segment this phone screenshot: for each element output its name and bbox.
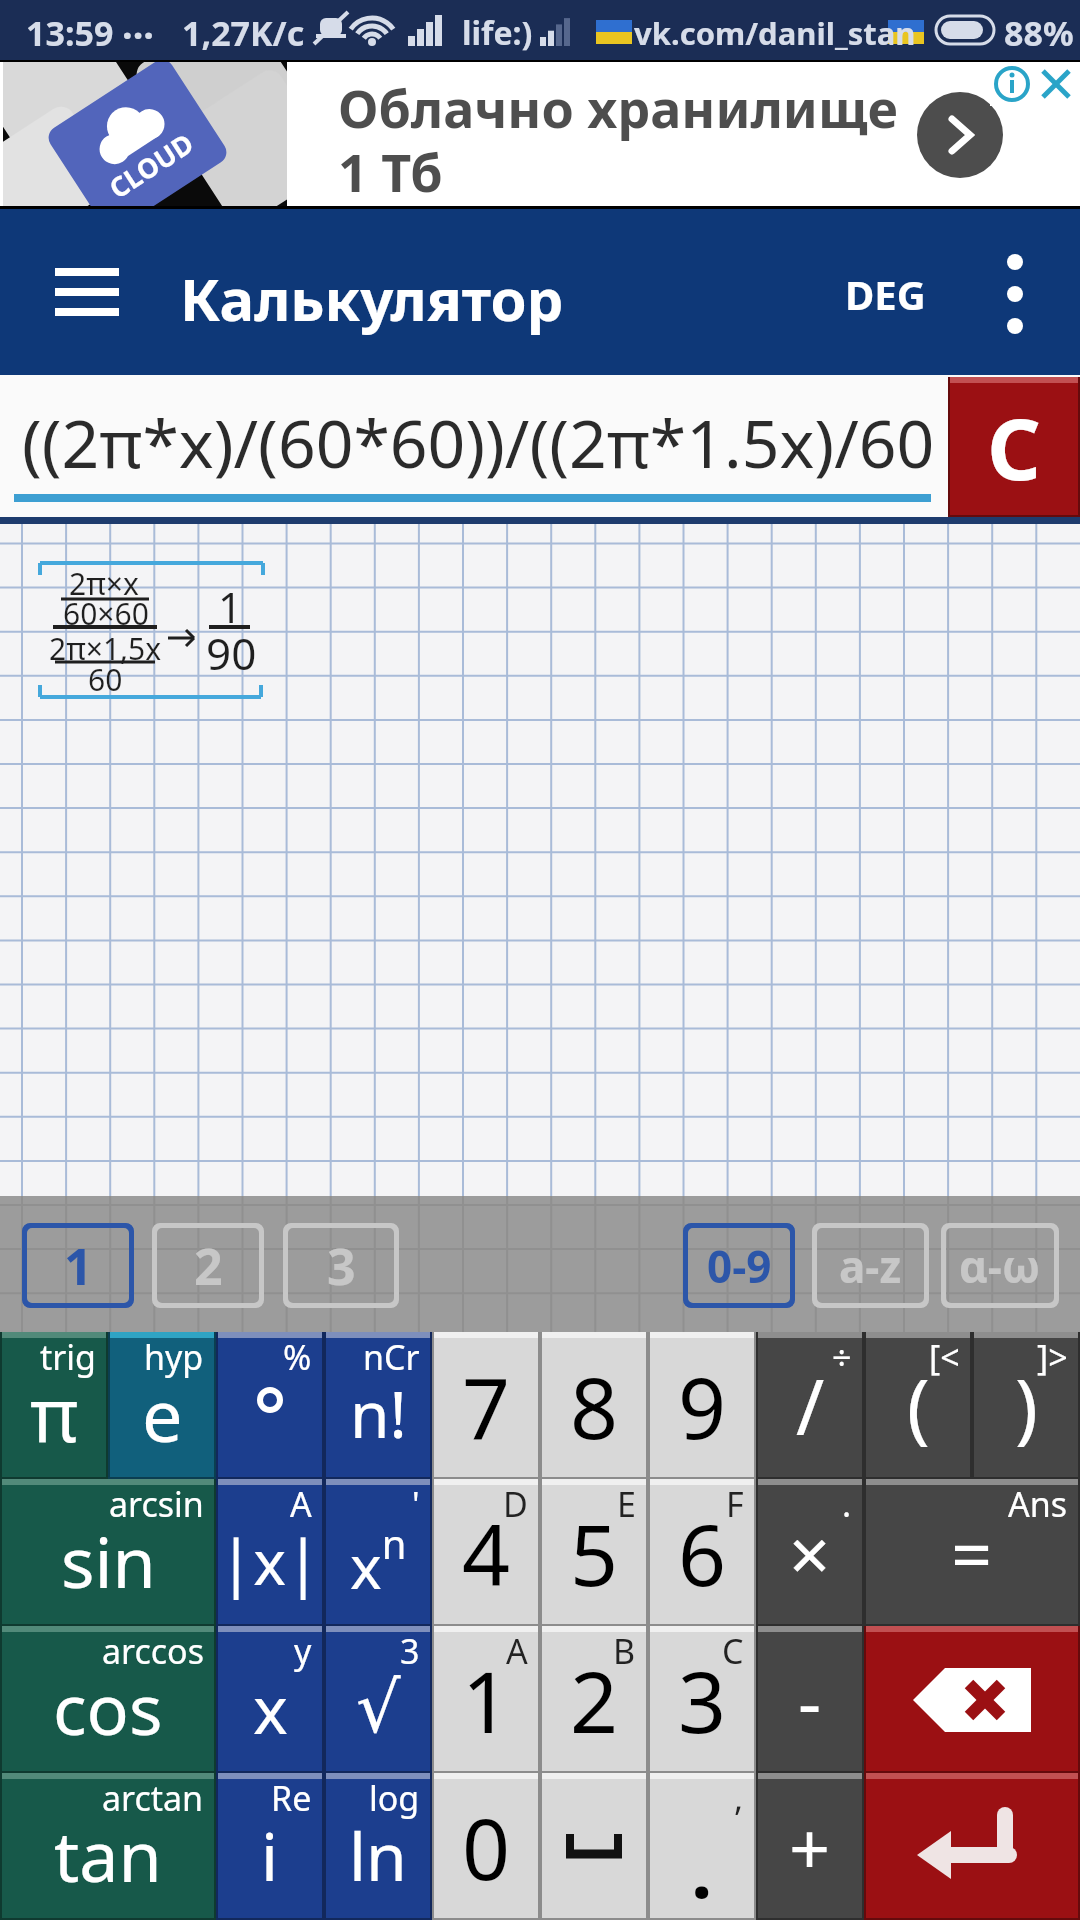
staticText: nCr [363, 1334, 420, 1380]
staticText: cos [53, 1660, 163, 1755]
staticText: 0-9 [707, 1236, 772, 1296]
staticText: 1 Тб [338, 136, 443, 207]
button[interactable]: Ans [864, 1479, 1080, 1626]
staticText: 7 [462, 1349, 511, 1463]
button[interactable]: arcsin [0, 1479, 216, 1626]
button[interactable]: A [216, 1479, 324, 1626]
button[interactable]: 9 [648, 1332, 756, 1479]
staticText: 88% [1004, 10, 1074, 56]
button[interactable]: trig [0, 1332, 108, 1479]
button[interactable]: 8 [540, 1332, 648, 1479]
staticText: 3 [400, 1628, 420, 1674]
button[interactable]: 2 [152, 1223, 264, 1308]
button[interactable]: arctan [0, 1773, 216, 1920]
staticText: Калькулятор [180, 259, 564, 338]
staticText: C [722, 1628, 744, 1674]
staticText: / [796, 1354, 825, 1458]
staticText: D [503, 1481, 528, 1527]
staticText: y [294, 1628, 312, 1674]
button[interactable]: [< [864, 1332, 972, 1479]
staticText: arcsin [109, 1481, 204, 1527]
button[interactable]: C [648, 1626, 756, 1773]
staticText: ... [122, 0, 155, 50]
button[interactable]: 0-9 [683, 1223, 795, 1308]
staticText: a-z [839, 1236, 902, 1296]
button[interactable]: DEG [830, 264, 940, 324]
button[interactable]: C [948, 377, 1080, 517]
button[interactable]: + [756, 1773, 864, 1920]
staticText: sin [61, 1513, 156, 1608]
button[interactable]: 1 [22, 1223, 134, 1308]
button[interactable]: - [756, 1626, 864, 1773]
button[interactable] [917, 92, 1003, 178]
staticText: ) [1015, 1354, 1038, 1458]
staticText: - [798, 1651, 822, 1749]
button[interactable]: 7 [432, 1332, 540, 1479]
staticText: 2π×1,5x [49, 628, 162, 669]
staticText: tan [54, 1807, 162, 1902]
button[interactable]: log [324, 1773, 432, 1920]
staticText: arctan [102, 1775, 204, 1821]
button[interactable]: arccos [0, 1626, 216, 1773]
button[interactable]: CLOUD [0, 60, 1080, 209]
staticText: ]> [1037, 1334, 1068, 1380]
button[interactable]: 3 [324, 1626, 432, 1773]
staticText: x [253, 1663, 288, 1753]
staticText: 60 [88, 659, 123, 700]
button[interactable]: nCr [324, 1332, 432, 1479]
button[interactable] [540, 1773, 648, 1920]
button[interactable] [985, 239, 1045, 349]
staticText: Re [271, 1775, 312, 1821]
button[interactable]: 0 [432, 1773, 540, 1920]
button[interactable] [990, 62, 1034, 106]
button[interactable]: a-z [812, 1223, 929, 1308]
button[interactable]: α-ω [941, 1223, 1059, 1308]
staticText: × [789, 1504, 831, 1602]
button[interactable]: , [648, 1773, 756, 1920]
staticText: A [290, 1481, 312, 1527]
button[interactable]: ÷ [756, 1332, 864, 1479]
staticText: C [987, 390, 1041, 504]
button[interactable] [1034, 62, 1078, 106]
button[interactable]: ' [324, 1479, 432, 1626]
staticText: % [283, 1334, 312, 1380]
button[interactable] [864, 1773, 1080, 1920]
staticText: F [726, 1481, 744, 1527]
staticText: √ [356, 1667, 401, 1748]
staticText: B [613, 1628, 636, 1674]
staticText: + [789, 1798, 831, 1896]
button[interactable]: 3 [283, 1223, 399, 1308]
staticText: [< [929, 1334, 960, 1380]
button[interactable]: Re [216, 1773, 324, 1920]
button[interactable]: D [432, 1479, 540, 1626]
staticText: hyp [144, 1334, 204, 1380]
staticText: ÷ [832, 1334, 852, 1380]
staticText: log [369, 1775, 420, 1821]
staticText: 2 [194, 1232, 223, 1300]
button[interactable]: E [540, 1479, 648, 1626]
staticText: vk.com/danil_stan [634, 12, 916, 54]
staticText: 2π×x [69, 563, 139, 604]
staticText: Ans [1008, 1481, 1068, 1527]
staticText: CLOUD [102, 124, 201, 206]
staticText: A [506, 1628, 528, 1674]
staticText: 9 [678, 1349, 727, 1463]
button[interactable] [55, 268, 119, 316]
staticText: 13:59 [26, 10, 114, 56]
button[interactable]: y [216, 1626, 324, 1773]
staticText: , [734, 1775, 744, 1821]
button[interactable] [864, 1626, 1080, 1773]
staticText: ln [349, 1810, 407, 1900]
button[interactable]: % [216, 1332, 324, 1479]
button[interactable]: hyp [108, 1332, 216, 1479]
button[interactable]: . [756, 1479, 864, 1626]
staticText: π [30, 1363, 79, 1464]
button[interactable]: A [432, 1626, 540, 1773]
staticText: |x| [219, 1519, 321, 1603]
staticText: 1,27K/c [182, 10, 305, 56]
button[interactable]: ]> [972, 1332, 1080, 1479]
staticText: DEG [845, 267, 926, 321]
staticText: α-ω [959, 1236, 1041, 1296]
button[interactable]: B [540, 1626, 648, 1773]
button[interactable]: F [648, 1479, 756, 1626]
